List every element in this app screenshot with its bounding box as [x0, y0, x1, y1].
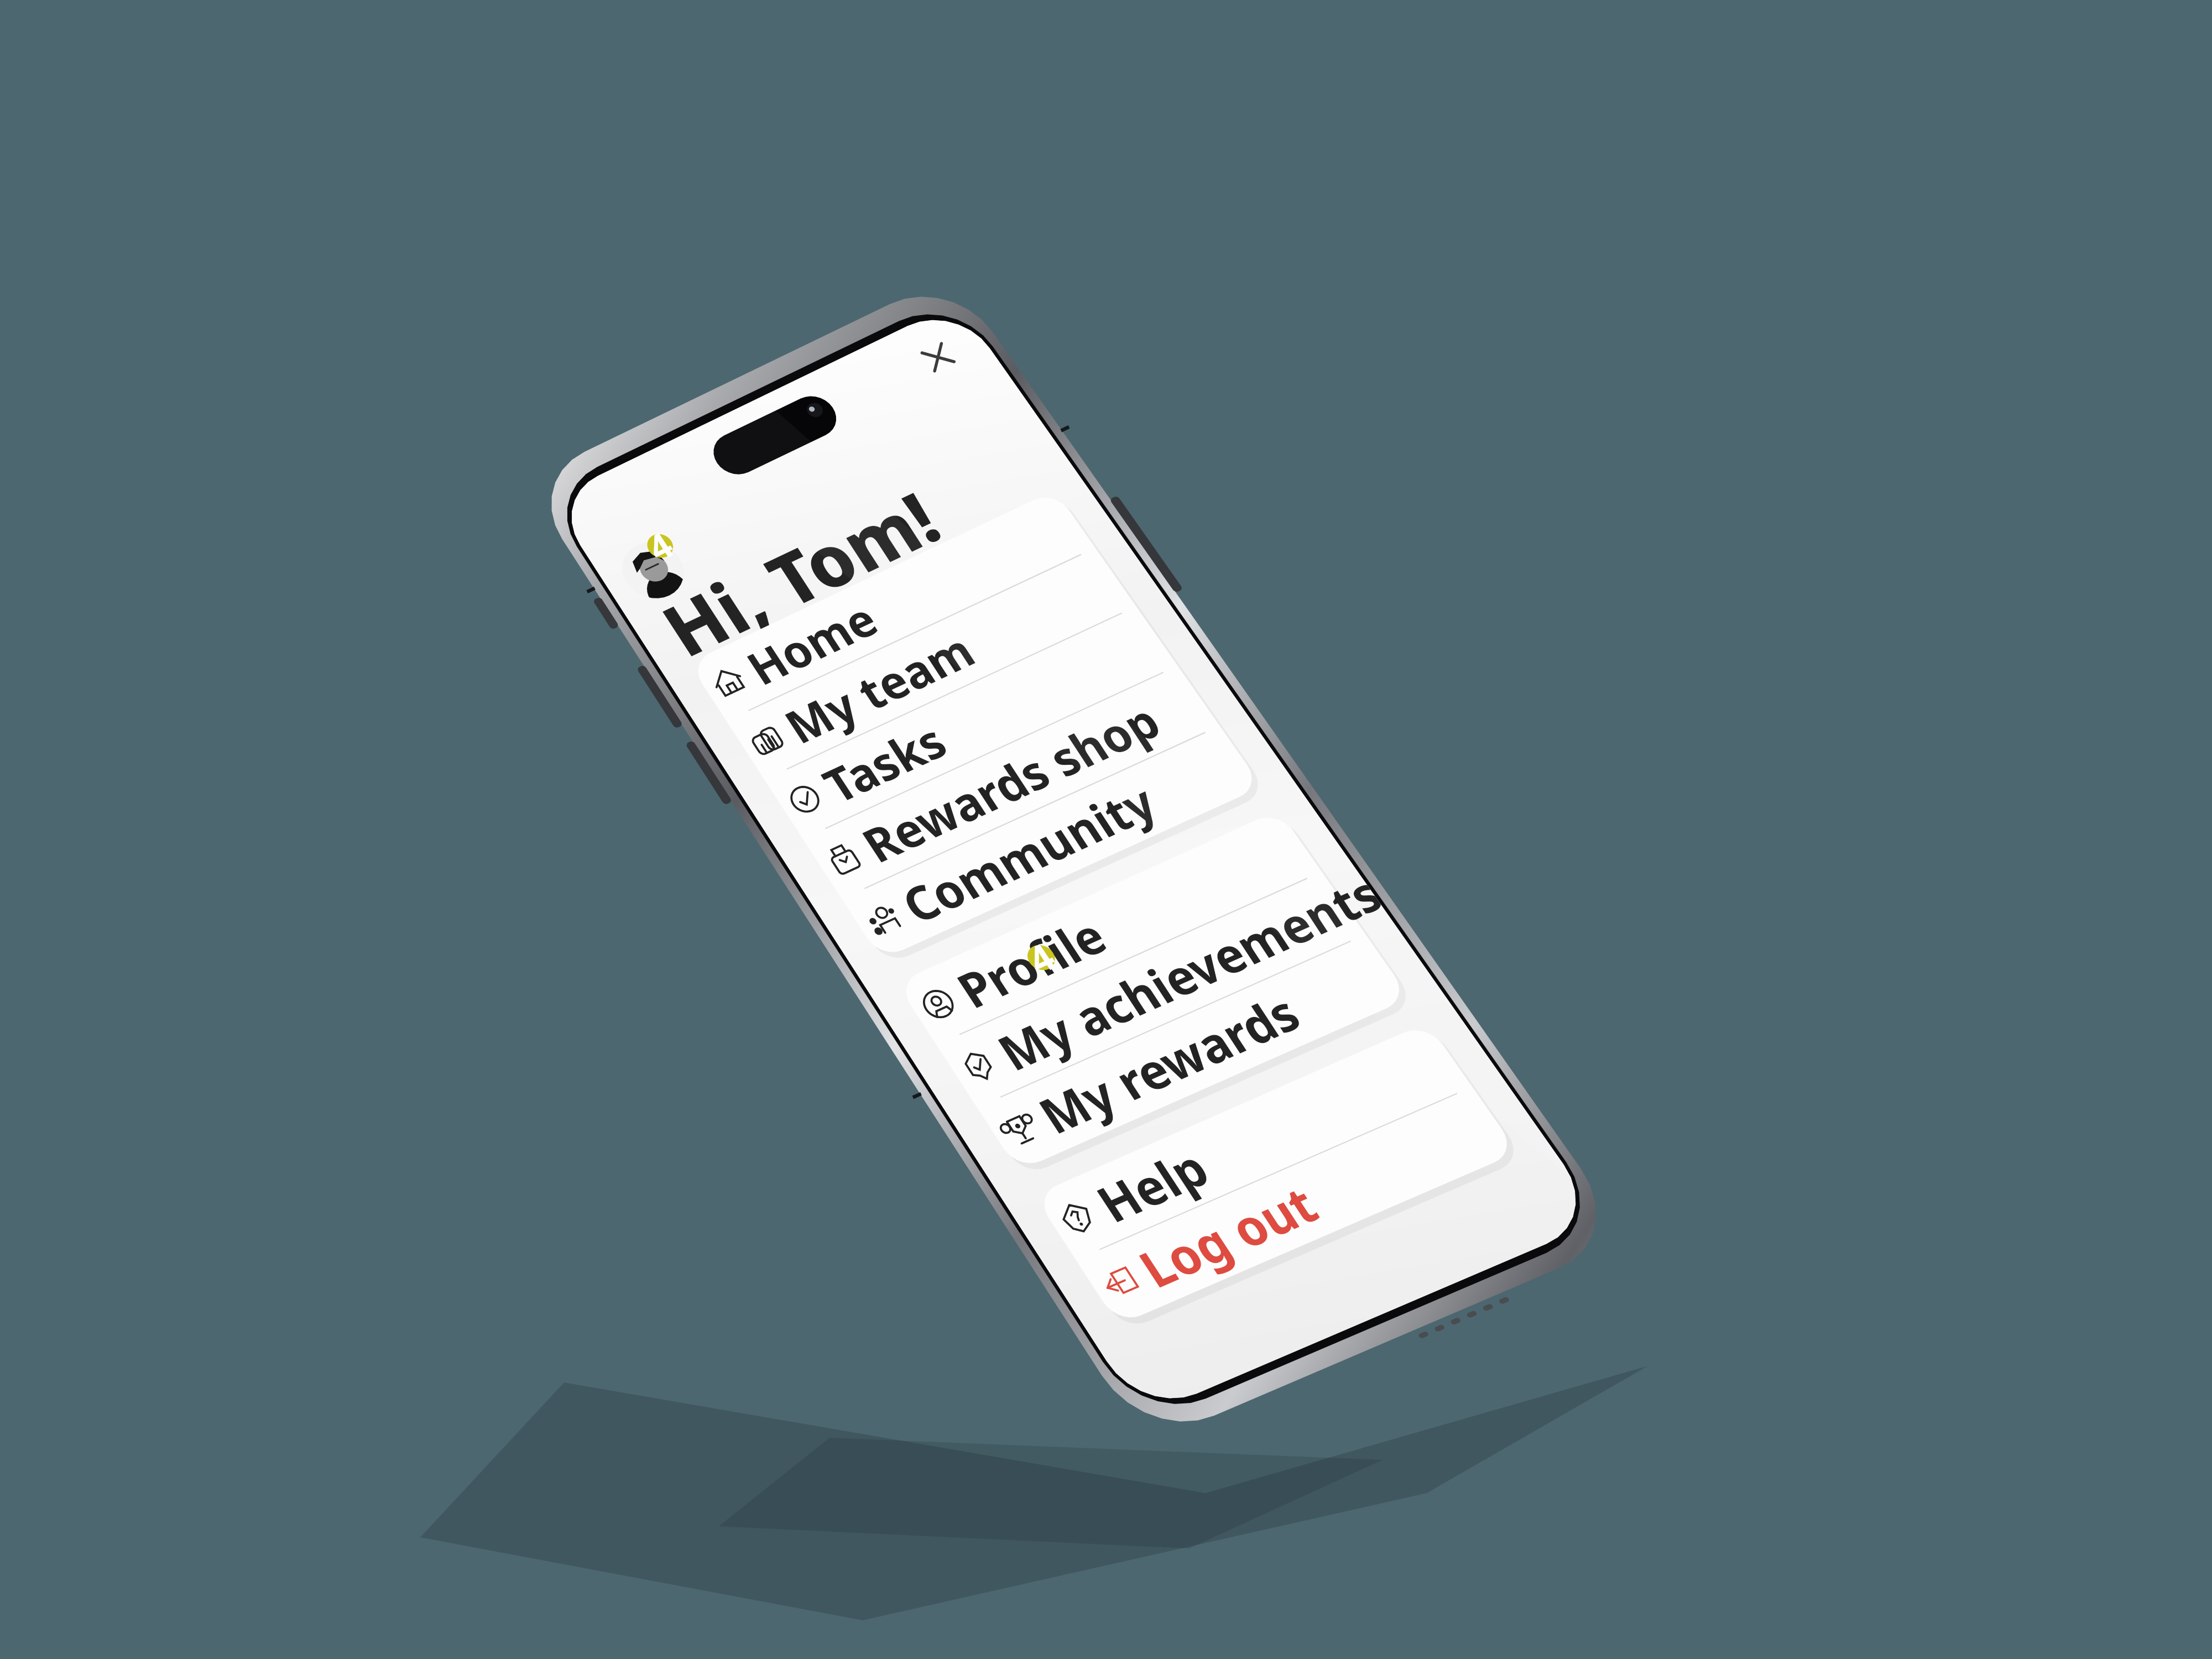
button[interactable]: Navigation menu — [0, 0, 2212, 1659]
